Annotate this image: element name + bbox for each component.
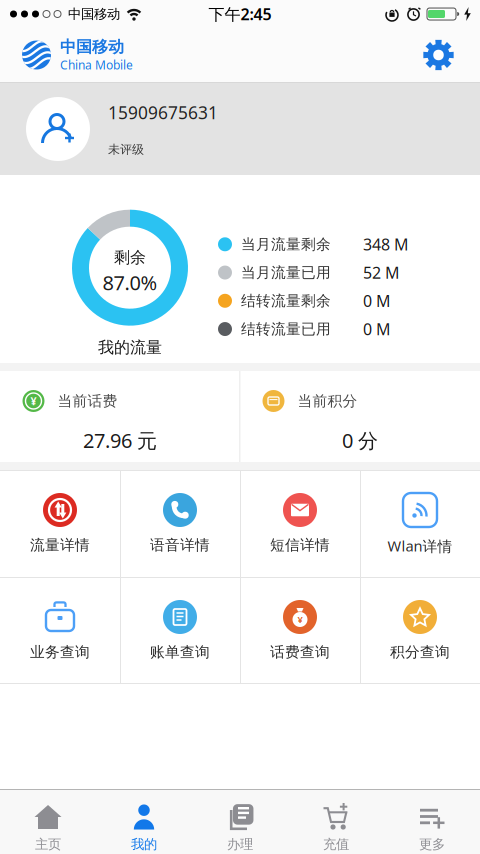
staticText: 未评级 xyxy=(108,142,144,157)
button[interactable]: 业务查询 xyxy=(0,577,120,684)
button[interactable]: 积分查询 xyxy=(360,577,480,684)
staticText: 当前积分 xyxy=(297,392,357,410)
staticText: 中国移动 xyxy=(68,6,120,22)
button[interactable]: Wlan详情 xyxy=(360,470,480,577)
button[interactable]: 主页 xyxy=(0,790,96,854)
button[interactable]: 当前积分 xyxy=(240,371,479,462)
staticText: 更多 xyxy=(419,836,445,852)
button[interactable]: 办理 xyxy=(192,790,288,854)
button[interactable]: ¥ xyxy=(0,371,239,462)
staticText: 52 M xyxy=(363,262,400,283)
staticText: 主页 xyxy=(35,836,61,852)
staticText: China Mobile xyxy=(60,57,133,73)
button[interactable]: 流量详情 xyxy=(0,470,120,577)
staticText: 流量详情 xyxy=(30,536,90,554)
staticText: 当月流量剩余 xyxy=(241,235,331,253)
staticText: 语音详情 xyxy=(150,536,210,554)
staticText: 中国移动 xyxy=(60,37,124,57)
staticText: 348 M xyxy=(363,234,409,255)
staticText: 剩余 xyxy=(114,248,146,267)
button[interactable]: 账单查询 xyxy=(120,577,240,684)
staticText: 当前话费 xyxy=(57,392,117,410)
staticText: ¥ xyxy=(30,394,36,408)
staticText: 结转流量剩余 xyxy=(241,292,331,310)
staticText: ¥ xyxy=(297,613,302,626)
staticText: 我的 xyxy=(131,836,157,852)
button[interactable]: 我的 xyxy=(96,790,192,854)
staticText: 0 M xyxy=(363,290,391,311)
staticText: 0 分 xyxy=(342,427,378,454)
staticText: 短信详情 xyxy=(270,536,330,554)
staticText: 话费查询 xyxy=(270,643,330,661)
button[interactable]: 更多 xyxy=(384,790,480,854)
staticText: 下午2:45 xyxy=(208,3,271,25)
staticText: 充值 xyxy=(323,836,349,852)
button[interactable]: 语音详情 xyxy=(120,470,240,577)
button[interactable]: 短信详情 xyxy=(240,470,360,577)
staticText: 积分查询 xyxy=(390,643,450,661)
staticText: 账单查询 xyxy=(150,643,210,661)
staticText: 我的流量 xyxy=(98,338,162,357)
staticText: Wlan详情 xyxy=(387,536,452,556)
button[interactable]: 充值 xyxy=(288,790,384,854)
staticText: 当月流量已用 xyxy=(241,263,331,281)
staticText: 结转流量已用 xyxy=(241,320,331,338)
button[interactable]: 15909675631 xyxy=(0,83,480,175)
button[interactable]: Settings xyxy=(423,39,454,70)
staticText: 15909675631 xyxy=(108,101,218,124)
staticText: 27.96 元 xyxy=(83,427,157,454)
staticText: 办理 xyxy=(227,836,253,852)
staticText: 87.0% xyxy=(102,269,157,296)
staticText: 0 M xyxy=(363,318,391,340)
staticText: 业务查询 xyxy=(30,643,90,661)
button[interactable]: ¥ xyxy=(240,577,360,684)
